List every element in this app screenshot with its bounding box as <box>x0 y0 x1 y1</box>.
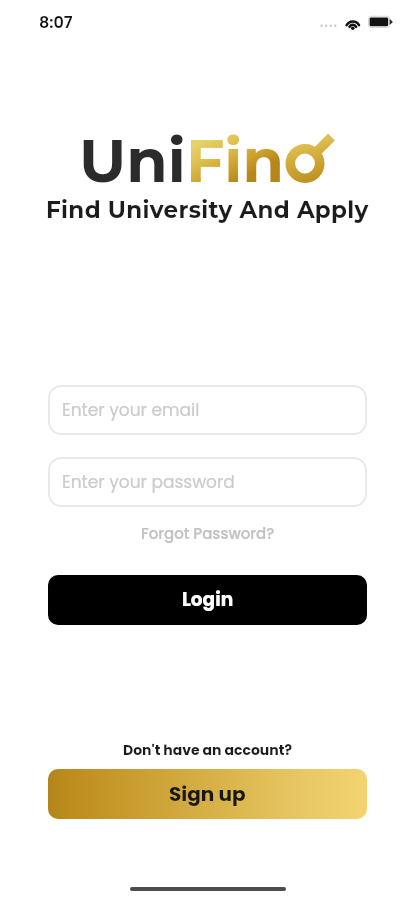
staticText: Login <box>182 587 234 613</box>
other: Status icons <box>316 12 396 32</box>
staticText: Enter your email <box>62 398 200 422</box>
staticText: 8:07 <box>39 11 73 33</box>
button[interactable]: Enter your password <box>48 457 367 507</box>
staticText: Fin <box>186 124 284 197</box>
staticText: Uni <box>79 124 186 197</box>
staticText: Find University And Apply <box>46 196 369 224</box>
button[interactable]: Enter your email <box>48 385 367 435</box>
button[interactable]: Forgot Password? <box>135 521 281 546</box>
staticText: Don't have an account? <box>123 740 292 760</box>
staticText: Sign up <box>169 780 246 808</box>
button[interactable]: Sign up <box>48 769 367 819</box>
button[interactable]: Login <box>48 575 367 625</box>
staticText: Enter your password <box>62 470 235 494</box>
